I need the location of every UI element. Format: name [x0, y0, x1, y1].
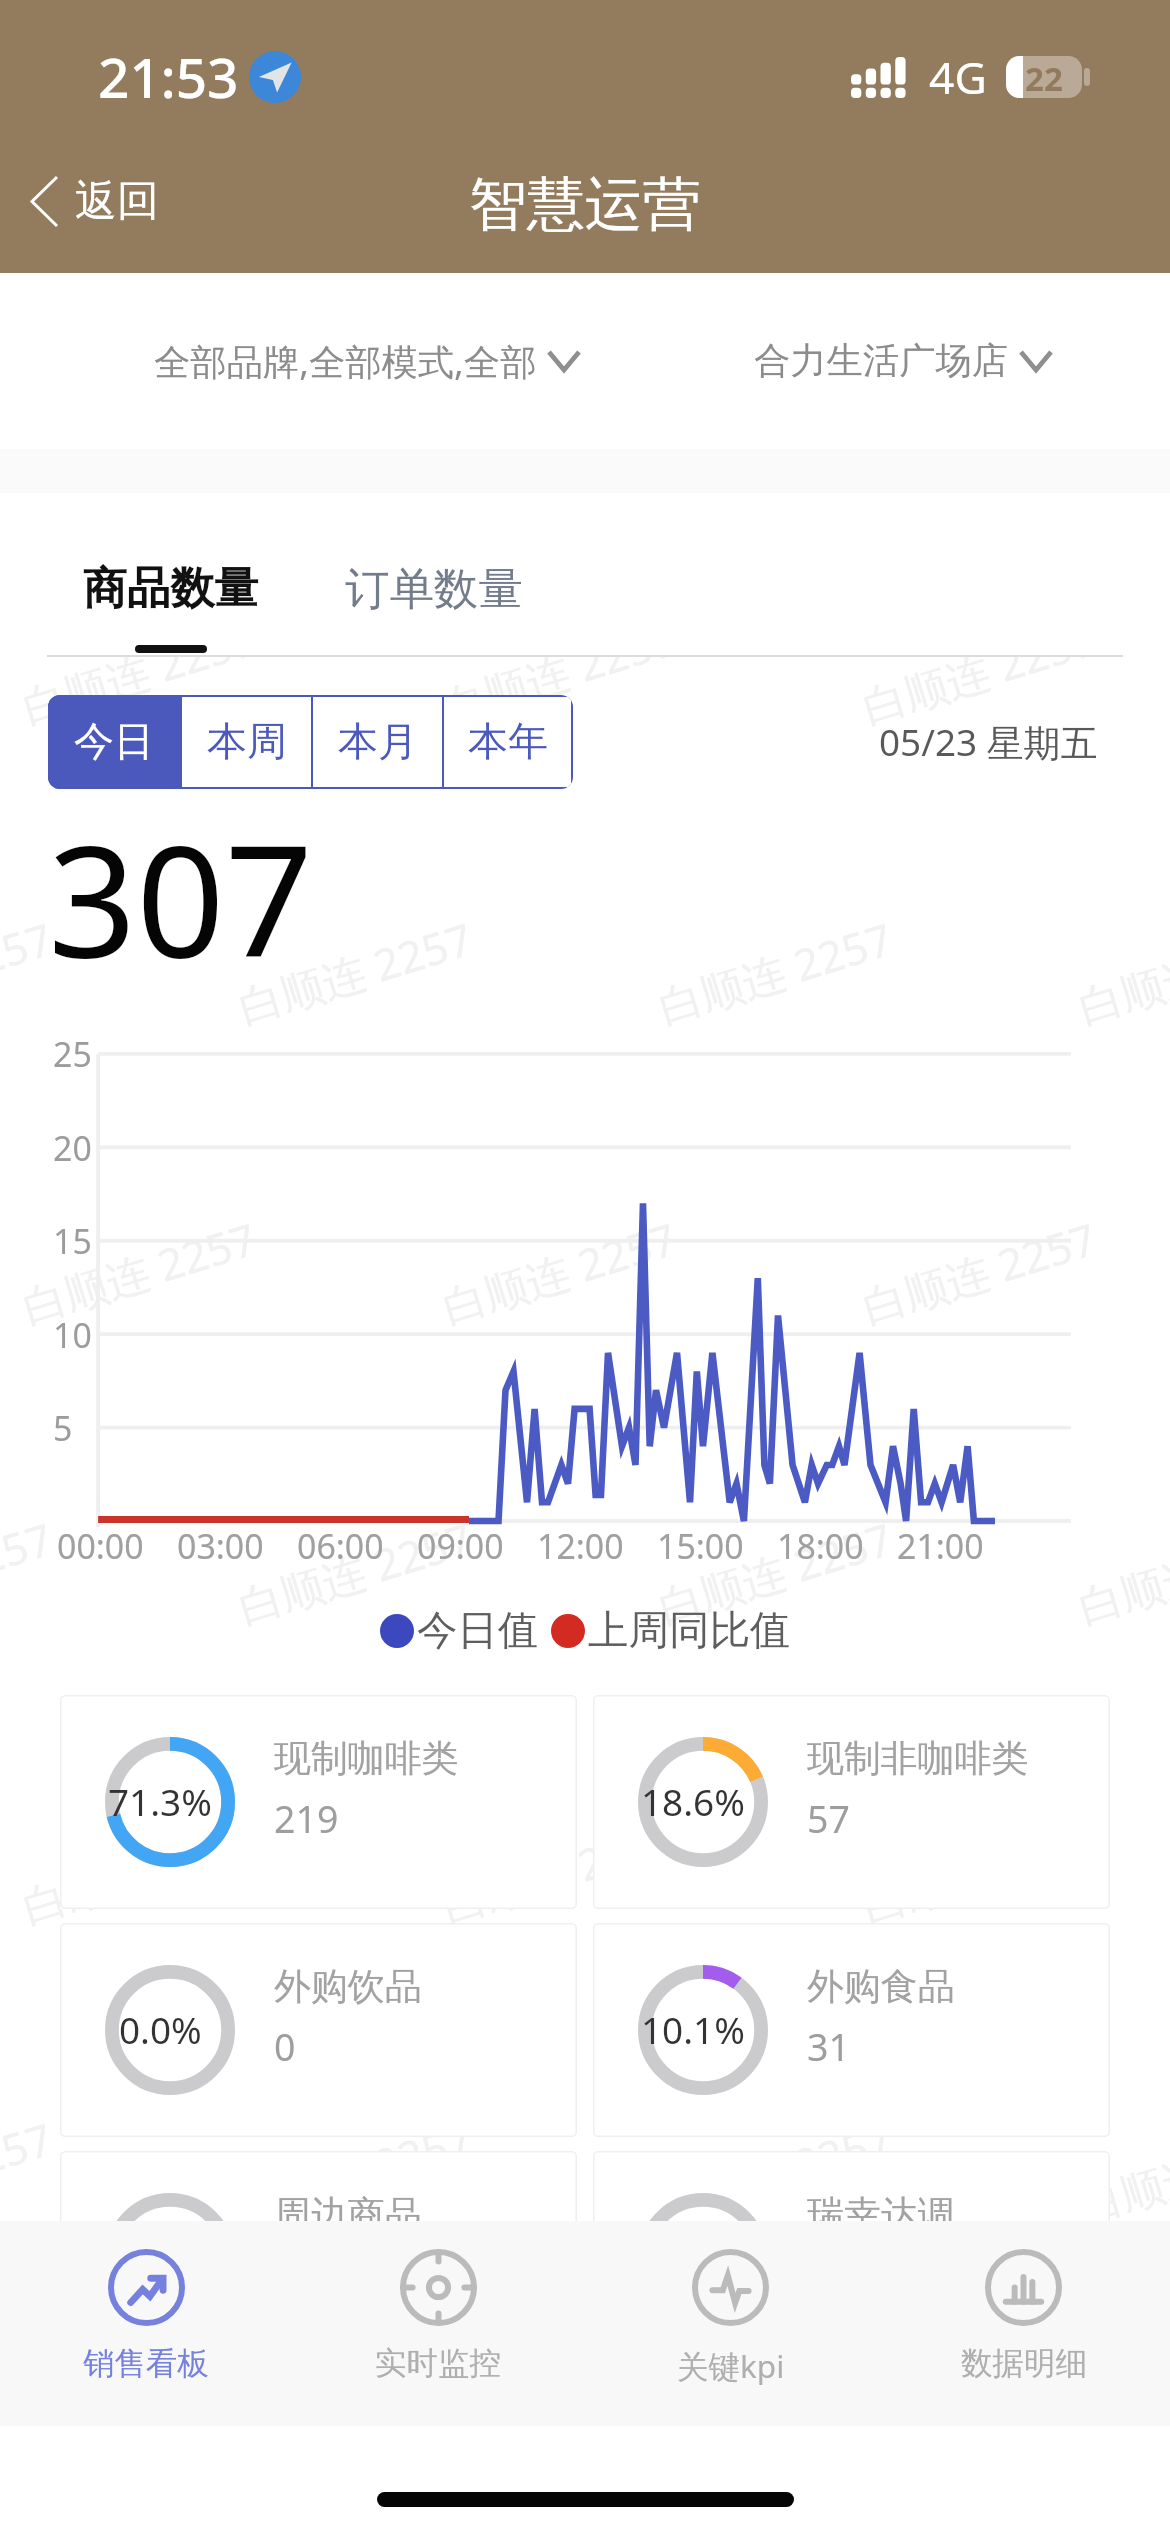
staticText: 03:00	[177, 1523, 264, 1569]
staticText: 今日值	[417, 1605, 539, 1656]
staticText: 20	[53, 1125, 92, 1171]
staticText: 307	[48, 792, 314, 1002]
button[interactable]: 返回	[12, 163, 189, 240]
staticText: 21:00	[897, 1523, 984, 1569]
staticText: 全部品牌,全部模式,全部	[154, 336, 537, 386]
button[interactable]: 商品数量	[83, 561, 259, 653]
staticText: 0	[274, 2021, 296, 2072]
staticText: 合力生活广场店	[754, 338, 1009, 384]
staticText: 09:00	[417, 1523, 504, 1569]
staticText: 数据明细	[961, 2344, 1087, 2384]
staticText: 白顺连 2257	[855, 1208, 1103, 1335]
button[interactable]: 本年	[444, 697, 571, 787]
staticText: 白顺连 2257	[651, 2108, 899, 2235]
staticText: 10.1%	[641, 2005, 745, 2055]
staticText: 12:00	[537, 1523, 624, 1569]
staticText: 外购食品	[807, 1963, 955, 2009]
staticText: 白顺连 2257	[1071, 2108, 1170, 2235]
staticText: 219	[274, 1793, 339, 1844]
staticText: 白顺连 2257	[855, 657, 1103, 735]
staticText: 瑞幸达调	[807, 2191, 955, 2237]
staticText: 白顺连 2257	[231, 2108, 479, 2235]
staticText: 白顺连 2257	[15, 1808, 263, 1935]
staticText: 销售看板	[83, 2344, 209, 2384]
button[interactable]: 关键kpi	[584, 2221, 877, 2426]
staticText: 22	[1025, 56, 1063, 98]
button[interactable]: 18.6%	[593, 1695, 1110, 1909]
staticText: 商品数量	[83, 561, 259, 616]
button[interactable]: 今日	[48, 695, 180, 789]
staticText: 白顺连 2257	[0, 908, 59, 1035]
button[interactable]: 订单数量	[345, 561, 523, 617]
staticText: 0.0%	[652, 2233, 735, 2283]
staticText: 白顺连 2257	[15, 1208, 263, 1335]
staticText: 白顺连 2257	[231, 908, 479, 1035]
staticText: 00:00	[57, 1523, 144, 1569]
staticText: 关键kpi	[677, 2344, 785, 2387]
staticText: 5	[53, 1405, 73, 1451]
staticText: 白顺连 2257	[651, 908, 899, 1035]
staticText: 白顺连 2257	[0, 1508, 59, 1635]
staticText: 31	[807, 2021, 850, 2072]
staticText: 15:00	[657, 1523, 744, 1569]
staticText: 白顺连 2257	[435, 1808, 683, 1935]
button[interactable]: 销售看板	[0, 2221, 292, 2426]
staticText: 上周同比值	[588, 1605, 791, 1656]
staticText: 白顺连 2257	[15, 657, 263, 735]
staticText: 白顺连 2257	[651, 1508, 899, 1635]
staticText: 白顺连 2257	[435, 657, 683, 735]
staticText: 白顺连 2257	[1071, 908, 1170, 1035]
button[interactable]: 全部品牌,全部模式,全部	[98, 273, 634, 449]
button[interactable]: 本月	[313, 697, 442, 787]
button[interactable]: 71.3%	[60, 1695, 577, 1909]
staticText: 05/23 星期五	[879, 717, 1098, 767]
staticText: 25	[53, 1031, 92, 1077]
staticText: 外购饮品	[274, 1963, 422, 2009]
button[interactable]: 0.0%	[60, 1923, 577, 2137]
staticText: 本周	[207, 717, 287, 767]
staticText: 周边商品	[274, 2191, 422, 2237]
staticText: 实时监控	[375, 2344, 501, 2384]
staticText: 返回	[75, 175, 159, 228]
button[interactable]: 数据明细	[877, 2221, 1170, 2426]
staticText: 15	[53, 1218, 92, 1264]
staticText: 4G	[929, 47, 987, 107]
staticText: 白顺连 2257	[0, 2108, 59, 2235]
staticText: 本月	[338, 717, 418, 767]
staticText: 0.0%	[119, 2233, 202, 2283]
staticText: 白顺连 2257	[435, 1208, 683, 1335]
button[interactable]: 0.0%	[60, 2151, 577, 2365]
staticText: 0.0%	[119, 2005, 202, 2055]
button[interactable]: 0.0%	[593, 2151, 1110, 2365]
staticText: 18.6%	[641, 1777, 745, 1827]
staticText: 57	[807, 1793, 850, 1844]
staticText: 白顺连 2257	[231, 1508, 479, 1635]
button[interactable]: 合力生活广场店	[634, 273, 1170, 449]
staticText: 现制非咖啡类	[807, 1735, 1029, 1781]
staticText: 白顺连 2257	[435, 2408, 683, 2532]
button[interactable]: 实时监控	[292, 2221, 584, 2426]
button[interactable]: 10.1%	[593, 1923, 1110, 2137]
staticText: 71.3%	[108, 1777, 212, 1827]
staticText: 06:00	[297, 1523, 384, 1569]
staticText: 10	[53, 1312, 92, 1358]
staticText: 今日	[74, 717, 154, 767]
staticText: 本年	[468, 717, 548, 767]
staticText: 白顺连 2257	[1071, 1508, 1170, 1635]
button[interactable]: 本周	[182, 697, 311, 787]
staticText: 现制咖啡类	[274, 1735, 459, 1781]
staticText: 21:53	[98, 39, 239, 114]
staticText: 智慧运营	[469, 168, 701, 241]
staticText: 18:00	[777, 1523, 864, 1569]
staticText: 订单数量	[345, 561, 523, 617]
